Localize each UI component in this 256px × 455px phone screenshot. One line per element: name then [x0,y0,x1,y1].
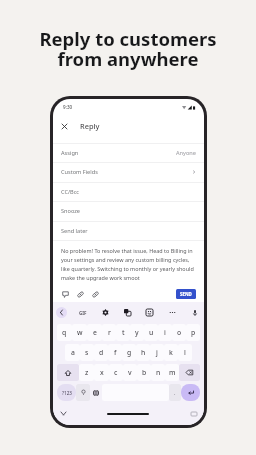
staticText: p [191,328,196,337]
staticText: SEND [180,291,192,297]
button[interactable]: a [65,344,80,361]
staticText: Custom Fields [61,168,98,176]
button[interactable]: b [137,364,151,381]
button[interactable]: f [108,344,122,361]
staticText: CC/Bcc [61,188,80,196]
staticText: r [108,328,111,337]
button[interactable]: Hide keyboard [58,408,69,419]
button[interactable]: m [165,364,179,381]
button[interactable]: Settings [99,306,112,319]
staticText: k [169,348,173,357]
button[interactable]: ?123 [57,384,76,401]
button[interactable]: d [94,344,108,361]
button[interactable]: Link [89,288,102,301]
button[interactable]: n [151,364,165,381]
button[interactable]: e [87,324,102,341]
staticText: f [114,348,117,357]
button[interactable]: Keyboard settings [188,408,199,419]
button[interactable]: Language [90,384,102,401]
button[interactable]: Comment [59,288,72,301]
staticText: i [164,328,166,337]
button[interactable]: h [136,344,150,361]
button[interactable]: s [80,344,94,361]
button[interactable]: Backspace [179,364,200,381]
staticText: Reply to customers from anywhere [39,26,217,71]
button[interactable]: Enter [181,384,200,401]
staticText: GIF [79,310,87,316]
staticText: No problem! To resolve that issue, Head … [61,247,198,281]
button[interactable]: Snooze [53,201,204,220]
button[interactable]: Emoji [143,306,156,319]
staticText: g [127,348,132,357]
button[interactable]: GIF [76,306,89,319]
button[interactable]: g [122,344,136,361]
staticText: h [141,348,146,357]
button[interactable]: r [102,324,116,341]
staticText: c [114,368,118,377]
button[interactable]: Shift [57,364,79,381]
button[interactable]: w [72,324,87,341]
button[interactable]: Close [57,119,71,133]
staticText: Snooze [61,207,81,215]
button[interactable]: Attach [74,288,87,301]
button[interactable]: Assign [53,143,204,162]
staticText: v [128,368,132,377]
staticText: j [156,348,158,357]
button[interactable]: Back [56,307,67,318]
button[interactable]: Voice input [188,306,201,319]
button[interactable]: Stickers [121,306,134,319]
staticText: u [149,328,154,337]
button[interactable]: Period [169,384,181,401]
staticText: s [85,348,89,357]
staticText: 9:30 [63,104,73,110]
staticText: m [169,368,176,377]
button[interactable]: x [94,364,109,381]
staticText: x [100,368,104,377]
button[interactable]: u [144,324,158,341]
staticText: l [184,348,186,357]
staticText: a [71,348,75,357]
staticText: b [142,368,147,377]
staticText: z [85,368,89,377]
button[interactable]: CC/Bcc [53,182,204,201]
staticText: Send later [61,227,88,235]
staticText: ?123 [62,390,72,396]
button[interactable]: l [178,344,192,361]
button[interactable]: o [172,324,186,341]
button[interactable]: SEND [176,289,196,299]
button[interactable]: i [158,324,172,341]
button[interactable]: v [123,364,137,381]
staticText: q [62,328,67,337]
button[interactable]: Emoji [76,384,90,401]
staticText: t [122,328,125,337]
staticText: n [156,368,161,377]
button[interactable]: k [164,344,178,361]
staticText: Anyone [176,149,196,157]
button[interactable]: c [109,364,123,381]
button[interactable]: t [116,324,130,341]
staticText: Reply [80,121,100,131]
button[interactable]: q [57,324,72,341]
button[interactable]: p [186,324,200,341]
staticText: o [177,328,182,337]
button[interactable]: j [150,344,164,361]
button[interactable]: Custom Fields [53,162,204,181]
button[interactable]: More [166,306,179,319]
button[interactable]: z [79,364,94,381]
staticText: w [77,328,83,337]
button[interactable]: Send later [53,221,204,240]
staticText: e [93,328,97,337]
button[interactable]: y [130,324,144,341]
staticText: d [99,348,104,357]
staticText: . [174,389,176,396]
staticText: y [135,328,139,337]
staticText: Assign [61,149,79,157]
